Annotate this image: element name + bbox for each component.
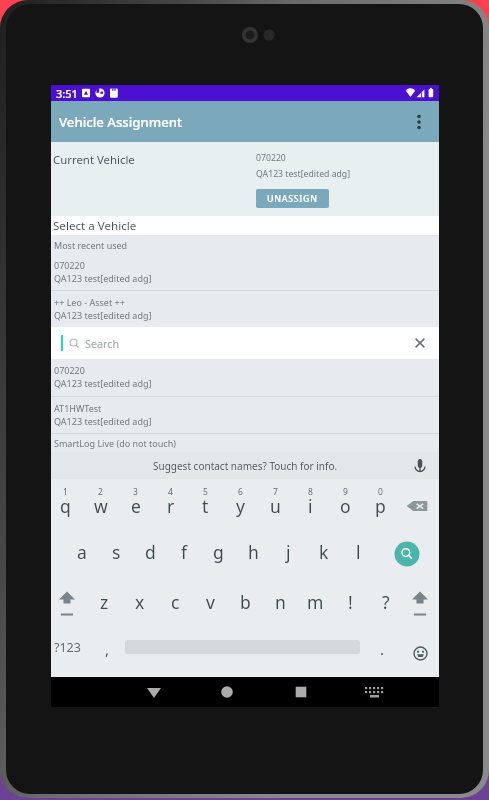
staticText: v: [206, 590, 215, 614]
staticText: c: [171, 590, 180, 614]
button[interactable]: 4: [153, 479, 188, 529]
button[interactable]: b: [228, 579, 263, 629]
staticText: 6: [238, 486, 243, 498]
staticText: QA123 test[edited adg]: [256, 168, 351, 180]
button[interactable]: 2: [83, 479, 118, 529]
staticText: q: [60, 494, 71, 518]
button[interactable]: 7: [258, 479, 293, 529]
staticText: g: [213, 540, 224, 564]
button[interactable]: z: [86, 579, 122, 629]
button[interactable]: Back: [139, 677, 169, 707]
staticText: s: [112, 540, 121, 564]
button[interactable]: d: [133, 529, 167, 579]
button[interactable]: 3: [118, 479, 153, 529]
button[interactable]: 9: [328, 479, 363, 529]
button[interactable]: Emoji: [404, 629, 437, 677]
button[interactable]: ?: [368, 579, 403, 629]
staticText: n: [275, 590, 286, 614]
staticText: i: [308, 494, 313, 518]
staticText: 070220: [54, 259, 85, 271]
button[interactable]: !: [333, 579, 368, 629]
staticText: Vehicle Assignment: [59, 113, 183, 131]
staticText: j: [286, 540, 291, 564]
staticText: ?123: [54, 639, 81, 656]
button[interactable]: n: [263, 579, 298, 629]
staticText: ++ Leo - Asset ++: [54, 296, 125, 308]
staticText: 070220: [54, 364, 85, 376]
button[interactable]: AT1HWTest: [51, 397, 439, 433]
button[interactable]: Home: [212, 677, 242, 707]
staticText: a: [77, 540, 87, 564]
staticText: QA123 test[edited adg]: [54, 377, 152, 389]
button[interactable]: UNASSIGN: [256, 189, 329, 208]
button[interactable]: h: [236, 529, 271, 579]
button[interactable]: m: [298, 579, 333, 629]
staticText: e: [131, 494, 141, 518]
staticText: ,: [105, 639, 110, 659]
button[interactable]: 070220: [51, 254, 439, 290]
button[interactable]: Shift: [48, 579, 86, 629]
staticText: 8: [308, 486, 313, 498]
button[interactable]: Clear search: [407, 330, 433, 356]
button[interactable]: a: [65, 529, 99, 579]
button[interactable]: 1: [48, 479, 83, 529]
staticText: z: [100, 590, 109, 614]
staticText: 0: [378, 486, 383, 498]
button[interactable]: x: [122, 579, 158, 629]
staticText: 3:51: [56, 86, 78, 101]
staticText: QA123 test[edited adg]: [54, 415, 152, 427]
button[interactable]: ,: [90, 629, 125, 677]
staticText: AT1HWTest: [54, 402, 102, 414]
button[interactable]: f: [167, 529, 201, 579]
button[interactable]: Recents: [286, 677, 316, 707]
staticText: x: [135, 590, 145, 614]
button[interactable]: Shift: [403, 579, 436, 629]
button[interactable]: 070220: [51, 359, 439, 396]
staticText: QA123 test[edited adg]: [54, 272, 152, 284]
staticText: QA123 test[edited adg]: [54, 309, 152, 321]
button[interactable]: k: [306, 529, 341, 579]
button[interactable]: Voice input: [409, 455, 431, 477]
staticText: m: [307, 590, 324, 614]
staticText: t: [202, 494, 209, 518]
staticText: k: [319, 540, 329, 564]
button[interactable]: ?123: [49, 629, 90, 677]
button[interactable]: 8: [293, 479, 328, 529]
button[interactable]: Backspace: [398, 479, 436, 529]
button[interactable]: ++ Leo - Asset ++: [51, 291, 439, 327]
staticText: 4: [168, 486, 173, 498]
staticText: p: [375, 494, 386, 518]
staticText: !: [348, 590, 353, 614]
staticText: u: [270, 494, 281, 518]
button[interactable]: 5: [188, 479, 223, 529]
button[interactable]: More options: [405, 108, 433, 136]
staticText: f: [181, 540, 188, 564]
button[interactable]: Search: [376, 529, 437, 579]
staticText: 3: [133, 486, 138, 498]
button[interactable]: Keyboard: [359, 677, 389, 707]
staticText: 2: [98, 486, 103, 498]
staticText: Search: [85, 336, 120, 351]
staticText: d: [145, 540, 156, 564]
staticText: h: [248, 540, 259, 564]
staticText: SmartLog Live (do not touch): [54, 437, 176, 449]
staticText: 9: [343, 486, 348, 498]
staticText: Most recent used: [54, 239, 128, 251]
button[interactable]: .: [360, 629, 404, 677]
button[interactable]: 6: [223, 479, 258, 529]
button[interactable]: Space: [125, 629, 360, 677]
button[interactable]: s: [99, 529, 133, 579]
button[interactable]: j: [271, 529, 306, 579]
button[interactable]: 0: [363, 479, 398, 529]
button[interactable]: l: [341, 529, 376, 579]
staticText: ?: [382, 590, 390, 614]
staticText: o: [340, 494, 351, 518]
staticText: 070220: [256, 152, 286, 164]
button[interactable]: v: [193, 579, 228, 629]
button[interactable]: c: [158, 579, 193, 629]
staticText: 7: [273, 486, 278, 498]
staticText: Select a Vehicle: [53, 218, 137, 234]
button[interactable]: g: [201, 529, 236, 579]
staticText: 1: [63, 486, 68, 498]
staticText: r: [167, 494, 175, 518]
